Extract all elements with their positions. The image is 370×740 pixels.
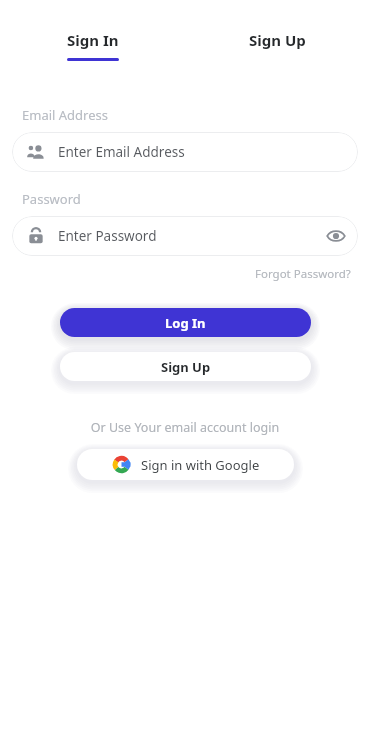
staticText: Log In [165,314,206,332]
staticText: Password [22,190,81,208]
staticText: Or Use Your email account login [0,419,370,436]
button[interactable]: Forgot Password? [255,264,370,284]
button[interactable]: Show password [320,220,352,252]
staticText: Forgot Password? [255,266,351,282]
staticText: Enter Password [58,227,157,245]
button[interactable]: Log In [60,308,311,337]
button[interactable]: Sign Up [185,30,370,61]
staticText: Sign in with Google [141,456,260,474]
staticText: Sign Up [161,358,211,376]
staticText: Enter Email Address [58,143,185,161]
button[interactable]: Sign in with Google [77,449,294,480]
staticText: Sign In [67,30,119,50]
staticText: Email Address [22,106,108,124]
button[interactable]: Sign Up [60,352,311,381]
staticText: Sign Up [249,30,306,50]
button[interactable]: Enter Email Address [12,132,358,172]
button[interactable]: Sign In [0,30,185,61]
button[interactable]: Enter Password [12,216,358,256]
